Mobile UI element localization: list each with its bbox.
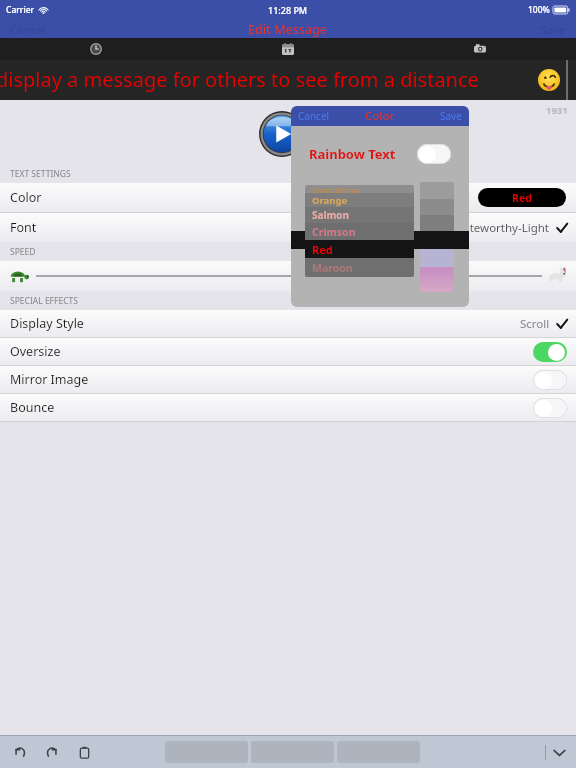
staticText: SPEED <box>10 246 36 258</box>
staticText: Save <box>540 22 566 36</box>
staticText: Carrier <box>6 4 35 16</box>
staticText: 1931 <box>546 104 568 117</box>
staticText: Noteworthy-Light <box>454 220 550 236</box>
staticText: Scroll <box>520 316 550 332</box>
staticText: Rainbow Text <box>309 145 396 163</box>
button[interactable]: Font <box>0 213 576 242</box>
staticText: 11:28 PM <box>268 4 308 16</box>
button[interactable]: Camera <box>384 38 576 60</box>
button[interactable]: Red <box>305 240 414 258</box>
button[interactable]: Mirror Image <box>0 366 576 393</box>
button[interactable]: Hide keyboard <box>549 742 569 762</box>
button[interactable]: On <box>533 342 567 362</box>
button[interactable]: Maroon <box>305 258 414 277</box>
staticText: Color <box>365 108 395 124</box>
button[interactable]: Red <box>478 188 566 207</box>
staticText: Cancel <box>298 109 330 123</box>
staticText: TEXT SETTINGS <box>10 168 71 180</box>
staticText: Cancel <box>10 22 46 36</box>
staticText: display a message for others to see from… <box>0 66 479 93</box>
button[interactable]: Orange <box>305 193 414 207</box>
staticText: Red <box>512 191 532 205</box>
staticText: Display Style <box>10 315 84 332</box>
button[interactable]: Crimson <box>305 223 414 240</box>
button[interactable]: Burnt Sienna <box>305 185 414 193</box>
button[interactable]: Undo <box>11 743 29 761</box>
staticText: Oversize <box>10 343 61 360</box>
staticText: Save <box>440 109 462 123</box>
staticText: Salmon <box>312 208 349 222</box>
button[interactable]: Calendar <box>192 38 384 60</box>
button[interactable]: Cancel <box>291 107 337 125</box>
button[interactable]: Color <box>0 183 576 212</box>
button[interactable]: Speed <box>0 261 576 291</box>
staticText: Orange <box>312 194 348 207</box>
button[interactable]: Bounce <box>0 394 576 421</box>
staticText: SPECIAL EFFECTS <box>10 295 78 307</box>
button[interactable]: Redo <box>43 743 61 761</box>
staticText: Edit Message <box>248 21 328 38</box>
staticText: Mirror Image <box>10 371 89 388</box>
button[interactable]: Off <box>533 398 567 418</box>
button[interactable]: Speed <box>294 267 313 286</box>
button[interactable]: Paste <box>75 743 93 761</box>
button[interactable]: Save <box>433 107 469 125</box>
staticText: Bounce <box>10 399 55 416</box>
button[interactable]: Recent <box>0 38 192 60</box>
staticText: 100% <box>528 4 550 16</box>
button[interactable]: Oversize <box>0 338 576 365</box>
staticText: Font <box>10 219 37 236</box>
staticText: Burnt Sienna <box>312 185 361 193</box>
button[interactable]: Off <box>533 370 567 390</box>
staticText: Red <box>312 242 333 257</box>
staticText: Crimson <box>312 225 356 239</box>
button[interactable]: Off <box>417 144 451 164</box>
staticText: Color <box>10 189 42 206</box>
button[interactable]: Salmon <box>305 207 414 223</box>
button[interactable]: Display Style <box>0 310 576 337</box>
staticText: Maroon <box>312 261 353 275</box>
